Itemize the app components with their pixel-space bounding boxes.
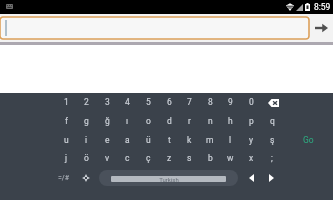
button[interactable]: Go [295, 131, 321, 149]
staticText: j [65, 153, 68, 163]
staticText: 3 [105, 97, 110, 107]
button[interactable] [0, 17, 309, 39]
button[interactable]: 1 [56, 93, 76, 111]
button[interactable]: ş [262, 131, 282, 149]
button[interactable]: =/# [52, 169, 76, 187]
button[interactable]: 6 [159, 93, 179, 111]
button[interactable]: ü [138, 131, 158, 149]
staticText: r [188, 116, 191, 126]
staticText: t [168, 135, 171, 145]
button[interactable]: Backspace [263, 94, 283, 112]
staticText: n [208, 116, 213, 126]
button[interactable]: p [241, 112, 261, 130]
staticText: ; [271, 153, 273, 163]
staticText: =/# [58, 174, 70, 182]
staticText: l [229, 135, 232, 145]
staticText: ı [126, 116, 129, 126]
staticText: b [208, 153, 213, 163]
staticText: 7 [187, 97, 192, 107]
button[interactable]: s [179, 149, 199, 167]
staticText: c [125, 153, 130, 163]
staticText: y [249, 135, 254, 145]
staticText: i [85, 135, 88, 145]
button[interactable]: Next [261, 169, 281, 187]
staticText: 6 [167, 97, 172, 107]
button[interactable]: x [241, 149, 261, 167]
staticText: d [167, 116, 172, 126]
button[interactable]: j [56, 149, 76, 167]
staticText: w [227, 153, 234, 163]
staticText: x [249, 153, 254, 163]
staticText: ç [146, 153, 151, 163]
button[interactable]: 5 [138, 93, 158, 111]
staticText: 9 [228, 97, 233, 107]
button[interactable]: d [159, 112, 179, 130]
button[interactable]: u [56, 131, 76, 149]
button[interactable]: 3 [97, 93, 117, 111]
staticText: u [64, 135, 69, 145]
button[interactable]: ğ [97, 112, 117, 130]
staticText: m [206, 135, 214, 145]
staticText: o [146, 116, 151, 126]
staticText: p [249, 116, 254, 126]
button[interactable]: z [159, 149, 179, 167]
staticText: 0 [249, 97, 254, 107]
staticText: 4 [125, 97, 130, 107]
staticText: ü [146, 135, 151, 145]
staticText: z [167, 153, 172, 163]
staticText: ğ [105, 116, 110, 126]
staticText: 2 [84, 97, 89, 107]
staticText: 8 [208, 97, 213, 107]
button[interactable]: b [200, 149, 220, 167]
staticText: Go [303, 135, 314, 145]
button[interactable]: n [200, 112, 220, 130]
staticText: e [105, 135, 110, 145]
staticText: 1 [64, 97, 69, 107]
staticText: f [65, 116, 68, 126]
staticText: h [228, 116, 233, 126]
button[interactable]: Previous [241, 169, 261, 187]
button[interactable]: v [97, 149, 117, 167]
button[interactable]: 0 [241, 93, 261, 111]
staticText: Turkish [159, 176, 179, 182]
button[interactable]: i [76, 131, 96, 149]
button[interactable]: Switch input method [76, 169, 96, 187]
button[interactable]: t [159, 131, 179, 149]
staticText: a [125, 135, 130, 145]
button[interactable]: c [117, 149, 137, 167]
button[interactable]: w [220, 149, 240, 167]
button[interactable]: k [179, 131, 199, 149]
button[interactable]: Turkish [99, 170, 238, 186]
staticText: ş [270, 135, 275, 145]
staticText: s [187, 153, 192, 163]
staticText: g [84, 116, 89, 126]
button[interactable]: q [262, 112, 282, 130]
staticText: k [187, 135, 192, 145]
staticText: ö [84, 153, 89, 163]
button[interactable]: h [220, 112, 240, 130]
button[interactable]: 7 [179, 93, 199, 111]
button[interactable]: 2 [76, 93, 96, 111]
button[interactable]: m [200, 131, 220, 149]
button[interactable]: ; [262, 149, 282, 167]
button[interactable]: ö [76, 149, 96, 167]
staticText: 8:59 [314, 2, 331, 12]
button[interactable]: r [179, 112, 199, 130]
button[interactable]: 4 [117, 93, 137, 111]
button[interactable]: f [56, 112, 76, 130]
button[interactable]: y [241, 131, 261, 149]
button[interactable]: g [76, 112, 96, 130]
button[interactable]: ç [138, 149, 158, 167]
staticText: q [270, 116, 275, 126]
staticText: v [105, 153, 110, 163]
button[interactable]: Go [310, 14, 333, 42]
button[interactable]: 9 [220, 93, 240, 111]
button[interactable]: l [220, 131, 240, 149]
button[interactable]: 8 [200, 93, 220, 111]
button[interactable]: o [138, 112, 158, 130]
button[interactable]: a [117, 131, 137, 149]
button[interactable]: e [97, 131, 117, 149]
staticText: 5 [146, 97, 151, 107]
button[interactable]: ı [117, 112, 137, 130]
